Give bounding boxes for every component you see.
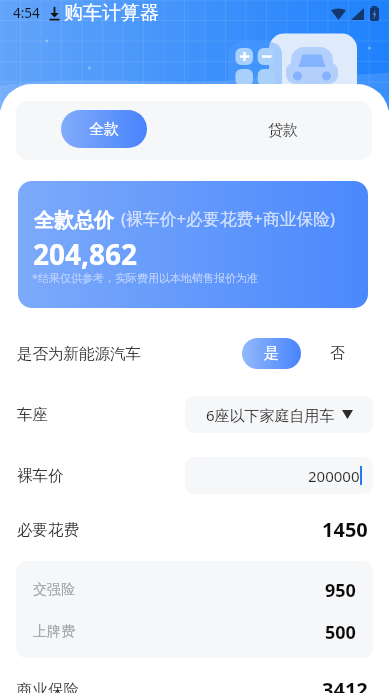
staticText: 否 bbox=[330, 344, 345, 363]
staticText: 贷款 bbox=[268, 121, 298, 140]
staticText: 500 bbox=[325, 620, 356, 645]
button[interactable]: 6座以下家庭自用车 bbox=[185, 396, 373, 433]
staticText: 上牌费 bbox=[33, 623, 75, 641]
staticText: 204,862 bbox=[33, 235, 138, 273]
staticText: *结果仅供参考，实际费用以本地销售报价为准 bbox=[32, 270, 259, 285]
button[interactable]: 贷款 bbox=[194, 101, 372, 160]
button[interactable]: 200000 bbox=[185, 457, 373, 494]
button[interactable]: 全款 bbox=[61, 110, 147, 148]
staticText: 是 bbox=[264, 344, 279, 363]
staticText: 交强险 bbox=[33, 581, 75, 599]
staticText: 购车计算器 bbox=[64, 1, 159, 25]
staticText: 950 bbox=[325, 578, 356, 603]
staticText: (裸车价+必要花费+商业保险) bbox=[121, 207, 336, 230]
other: Download bbox=[48, 2, 61, 24]
staticText: 必要花费 bbox=[17, 520, 79, 540]
staticText: 200000 bbox=[308, 466, 360, 486]
staticText: 6座以下家庭自用车 bbox=[206, 405, 335, 425]
staticText: 是否为新能源汽车 bbox=[17, 344, 141, 364]
staticText: 全款总价 bbox=[34, 208, 114, 233]
staticText: 4:54 bbox=[13, 4, 40, 22]
staticText: 裸车价 bbox=[17, 466, 64, 486]
staticText: 商业保险 bbox=[17, 680, 79, 693]
button[interactable]: 否 bbox=[301, 338, 373, 369]
button[interactable]: 是 bbox=[242, 338, 301, 369]
staticText: 3412 bbox=[322, 676, 368, 693]
staticText: 车座 bbox=[17, 405, 48, 425]
staticText: 1450 bbox=[322, 516, 368, 543]
staticText: 全款 bbox=[89, 120, 119, 139]
